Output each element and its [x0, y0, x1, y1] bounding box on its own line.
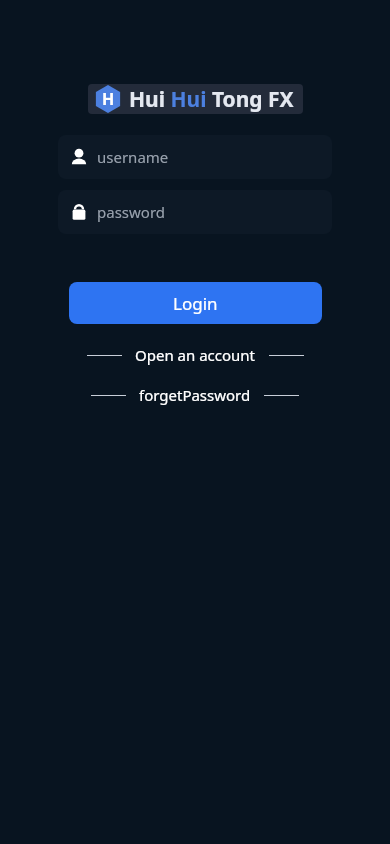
button[interactable]: Login — [69, 282, 322, 324]
button[interactable]: username — [58, 135, 332, 179]
staticText: forgetPassword — [139, 385, 251, 405]
staticText: Open an account — [135, 345, 256, 365]
staticText: password — [97, 202, 165, 222]
button[interactable]: Open an account — [83, 343, 308, 367]
staticText: Login — [173, 292, 218, 315]
button[interactable]: password — [58, 190, 332, 234]
staticText: Hui Hui Tong FX — [129, 85, 294, 114]
staticText: H — [102, 88, 115, 110]
staticText: username — [97, 147, 169, 167]
button[interactable]: forgetPassword — [87, 383, 303, 407]
